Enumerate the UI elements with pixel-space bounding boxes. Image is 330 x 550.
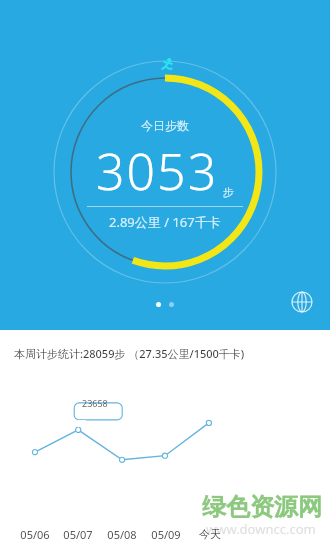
staticText: 05/08 [105,527,139,542]
staticText: 05/07 [61,527,95,542]
staticText: 绿色资源网 [202,492,322,522]
staticText: 步 [223,185,234,199]
staticText: 本周计步统计:28059步 （27.35公里/1500千卡) [14,346,245,361]
staticText: 2.89公里 / 167千卡 [109,213,221,231]
staticText: 3053 [96,137,219,205]
staticText: 今日步数 [141,118,189,133]
staticText: 05/06 [18,527,52,542]
button[interactable]: Map [286,286,318,318]
staticText: 今天 [193,527,227,541]
staticText: www.downcc.com [206,520,316,538]
staticText: 05/09 [149,527,183,542]
staticText: 23658 [82,397,108,409]
